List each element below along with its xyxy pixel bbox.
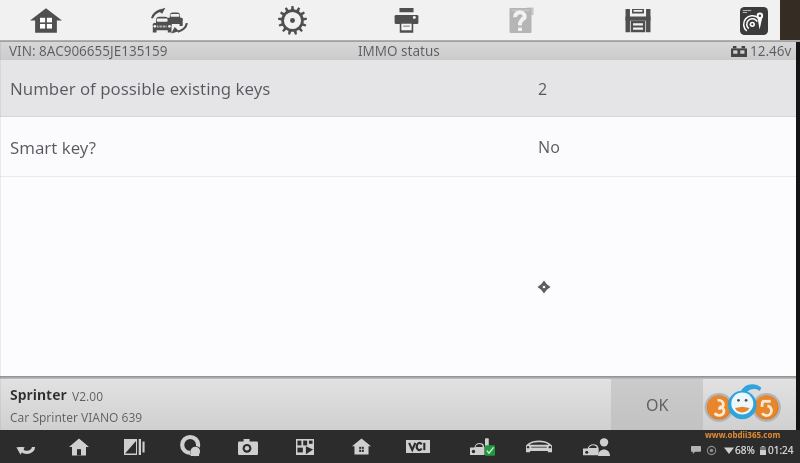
button[interactable]: Home bbox=[18, 0, 74, 41]
staticText: Smart key? bbox=[10, 136, 97, 159]
staticText: VIN: 8AC906655JE135159 bbox=[9, 42, 168, 60]
staticText: 12.46v bbox=[750, 42, 792, 60]
button[interactable]: VCI bbox=[394, 430, 442, 463]
button[interactable]: Shop bbox=[337, 430, 385, 463]
button[interactable]: Change vehicle bbox=[141, 0, 197, 41]
button[interactable]: Print bbox=[378, 0, 434, 41]
button[interactable]: Vehicle connected bbox=[458, 430, 506, 463]
button[interactable]: OK bbox=[611, 379, 703, 430]
staticText: 01:24 bbox=[768, 443, 794, 457]
button[interactable]: Home bbox=[55, 430, 103, 463]
button[interactable]: Save bbox=[610, 0, 666, 41]
button[interactable]: Settings bbox=[264, 0, 320, 41]
staticText: IMMO status bbox=[358, 42, 440, 60]
staticText: 2 bbox=[538, 78, 548, 100]
button[interactable]: Diagnostics bbox=[726, 0, 782, 41]
button[interactable]: Remote support bbox=[572, 430, 620, 463]
staticText: OK bbox=[646, 394, 669, 416]
button[interactable]: Vehicle bbox=[515, 430, 563, 463]
staticText: V2.00 bbox=[72, 388, 104, 404]
staticText: Number of possible existing keys bbox=[10, 77, 271, 100]
staticText: 68% bbox=[735, 443, 755, 457]
button[interactable]: Help bbox=[493, 0, 549, 41]
button[interactable]: Recent apps bbox=[110, 430, 158, 463]
button[interactable]: Smart key? bbox=[0, 117, 800, 177]
staticText: No bbox=[538, 136, 560, 158]
staticText: www.obdii365.com bbox=[705, 429, 781, 440]
staticText: Car Sprinter VIANO 639 bbox=[10, 409, 143, 425]
button[interactable]: Camera bbox=[224, 430, 272, 463]
staticText: Sprinter bbox=[10, 385, 67, 404]
button[interactable]: Number of possible existing keys bbox=[0, 60, 800, 117]
button[interactable]: Back bbox=[1, 430, 49, 463]
button[interactable]: Assistant bbox=[167, 430, 215, 463]
button[interactable]: Screenshot bbox=[281, 430, 329, 463]
